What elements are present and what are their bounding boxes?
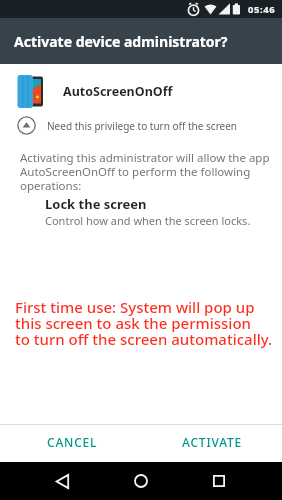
staticText: Activating this administrator will allow… <box>20 150 270 193</box>
staticText: ACTIVATE <box>182 434 242 450</box>
staticText: AutoScreenOnOff <box>63 83 173 100</box>
button[interactable]: ACTIVATE <box>141 425 282 462</box>
button[interactable]: CANCEL <box>0 425 141 462</box>
staticText: Lock the screen <box>45 195 147 213</box>
button[interactable] <box>39 462 85 500</box>
button[interactable] <box>118 462 164 500</box>
staticText: CANCEL <box>47 434 98 450</box>
button[interactable]: AutoScreenOnOff <box>14 75 282 108</box>
staticText: Activate device administrator? <box>14 32 228 51</box>
staticText: Need this privilege to turn off the scre… <box>47 119 238 133</box>
button[interactable] <box>196 462 242 500</box>
staticText: 05:46 <box>248 3 276 16</box>
staticText: Control how and when the screen locks. <box>45 213 251 228</box>
button[interactable]: Need this privilege to turn off the scre… <box>17 116 282 135</box>
staticText: First time use: System will pop up this … <box>15 297 273 349</box>
